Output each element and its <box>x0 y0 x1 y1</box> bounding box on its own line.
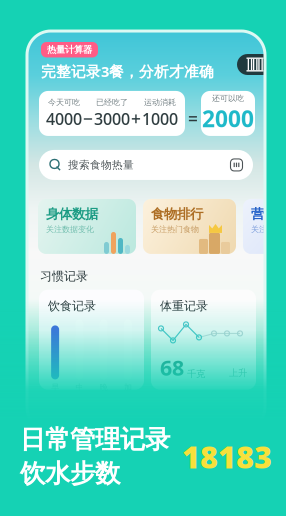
staticText: 中 <box>75 382 83 392</box>
staticText: 食物排行 <box>151 206 203 222</box>
button[interactable]: 身体数据 <box>38 199 136 254</box>
button[interactable]: 营养 <box>243 199 286 254</box>
staticText: 搜索食物热量 <box>68 158 134 171</box>
staticText: 上升 <box>229 367 247 379</box>
staticText: 今天可吃 <box>48 97 80 107</box>
staticText: 习惯记录 <box>40 269 88 284</box>
staticText: 饮水步数 <box>20 458 120 489</box>
staticText: 千克 <box>187 368 205 380</box>
staticText: 关注 <box>251 224 267 234</box>
staticText: 运动消耗 <box>144 97 176 107</box>
staticText: 饮食记录 <box>48 299 96 313</box>
staticText: 还可以吃 <box>212 93 244 103</box>
staticText: 晚 <box>100 382 108 392</box>
button[interactable]: 搜索食物热量 <box>39 150 253 180</box>
staticText: 关注热门食物 <box>151 224 199 234</box>
staticText: 68 <box>160 353 184 382</box>
staticText: 早 <box>51 382 59 392</box>
button[interactable]: 饮食记录 <box>39 290 144 390</box>
staticText: 18183 <box>182 436 272 477</box>
staticText: 日常管理记录 <box>20 424 170 455</box>
staticText: 3000 <box>94 108 130 129</box>
staticText: = <box>188 107 198 130</box>
button[interactable]: 体重记录 <box>151 290 256 390</box>
staticText: 4000 <box>46 108 82 129</box>
button[interactable]: 饮食日记 <box>229 42 265 63</box>
staticText: 已经吃了 <box>96 97 128 107</box>
staticText: − <box>83 107 93 130</box>
staticText: 关注数据变化 <box>46 224 94 234</box>
staticText: 营养 <box>251 206 277 222</box>
staticText: 加 <box>124 382 132 392</box>
button[interactable]: 食物排行 <box>143 199 236 254</box>
staticText: 体重记录 <box>160 299 208 313</box>
staticText: 2000 <box>202 103 254 133</box>
staticText: 完整记录3餐，分析才准确 <box>41 61 214 81</box>
staticText: 身体数据 <box>46 206 98 222</box>
staticText: 热量计算器 <box>47 44 92 55</box>
staticText: 1000 <box>142 108 178 129</box>
staticText: + <box>131 107 141 130</box>
